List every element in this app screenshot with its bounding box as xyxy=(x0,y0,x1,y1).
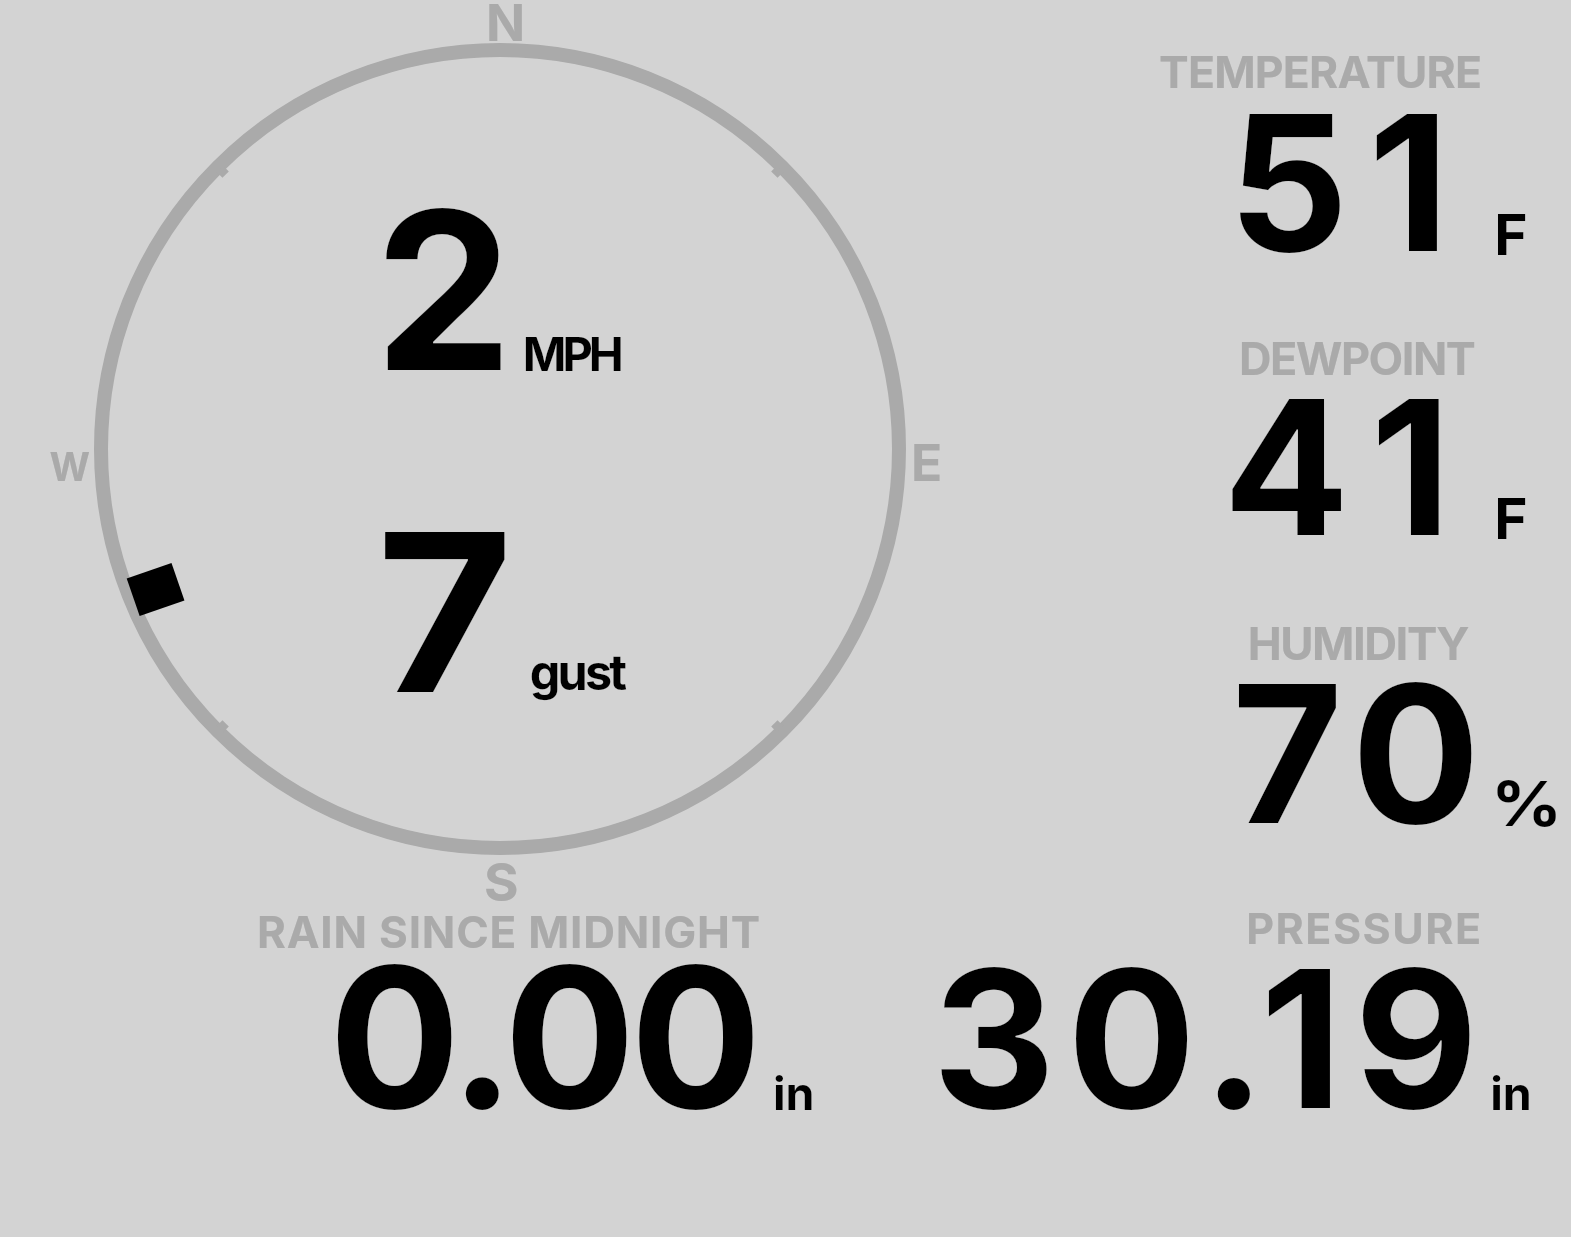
button[interactable]: Wind: 2 miles per hour, gusting 7, from … xyxy=(40,0,970,900)
button[interactable]: Temperature 51 degrees Fahrenheit xyxy=(1100,20,1571,290)
button[interactable]: Rain since midnight 0.00 inches xyxy=(180,890,880,1130)
button[interactable]: Humidity 70 percent xyxy=(1100,590,1571,870)
button[interactable]: Pressure 30.19 inches xyxy=(900,890,1571,1130)
button[interactable]: Dewpoint 41 degrees Fahrenheit xyxy=(1100,300,1571,580)
